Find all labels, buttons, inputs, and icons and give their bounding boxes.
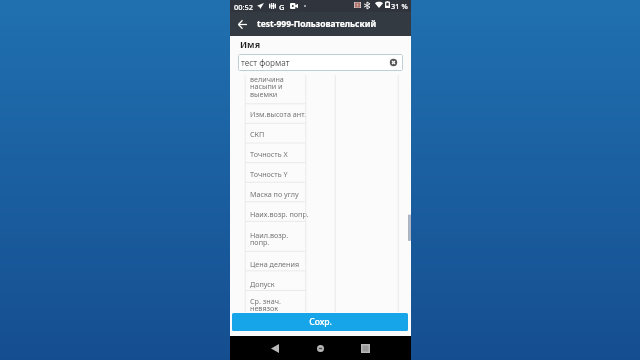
staticText: величина насыпи и выемки (250, 74, 284, 100)
staticText: Допуск (250, 279, 275, 289)
button[interactable]: Back (263, 336, 286, 360)
button[interactable]: Наил.возр. попр. (230, 224, 411, 254)
button[interactable]: Допуск (230, 274, 411, 294)
staticText: Ср. знач. невязок (250, 296, 281, 314)
button[interactable]: Ср. знач. невязок (230, 294, 411, 315)
staticText: Точность X (250, 149, 288, 159)
staticText: Наих.возр. попр. (250, 209, 309, 219)
button[interactable]: Recent apps (354, 336, 377, 360)
staticText: Маска по углу (250, 189, 299, 199)
staticText: 00:52 (234, 2, 253, 12)
button[interactable]: Home (309, 336, 332, 360)
button[interactable]: Сохр. (232, 313, 408, 331)
button[interactable]: Точность X (230, 144, 411, 164)
button[interactable]: Clear text (389, 58, 398, 67)
button[interactable]: Маска по углу (230, 184, 411, 204)
staticText: Имя (240, 38, 261, 50)
button[interactable]: тест формат (238, 54, 403, 71)
staticText: test-999-Пользовательский (257, 18, 377, 30)
staticText: G (279, 2, 285, 12)
button[interactable]: Изм.высота ант. (230, 104, 411, 124)
staticText: Сохр. (309, 316, 332, 328)
staticText: Точность Y (250, 169, 288, 179)
staticText: 31 % (391, 1, 408, 11)
button[interactable]: величина насыпи и выемки (230, 75, 411, 104)
staticText: Цена деления (250, 259, 300, 269)
staticText: Изм.высота ант. (250, 109, 307, 119)
staticText: тест формат (241, 57, 290, 68)
button[interactable]: Наих.возр. попр. (230, 204, 411, 224)
staticText: СКП (250, 129, 265, 139)
button[interactable]: СКП (230, 124, 411, 144)
button[interactable]: Back (232, 12, 252, 36)
button[interactable]: Цена деления (230, 254, 411, 274)
staticText: Наил.возр. попр. (250, 230, 289, 248)
button[interactable]: Точность Y (230, 164, 411, 184)
